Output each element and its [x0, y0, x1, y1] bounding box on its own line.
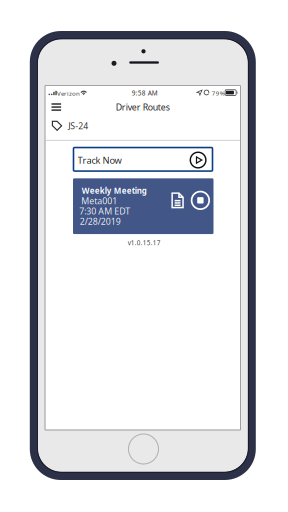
staticText: Meta001	[81, 195, 117, 207]
staticText: 2/28/2019	[80, 215, 121, 227]
staticText: Weekly Meeting	[82, 185, 147, 196]
button[interactable]: Track Now	[73, 148, 212, 171]
staticText: Verizon	[57, 89, 80, 97]
staticText: v1.0.15.17	[128, 238, 161, 247]
staticText: 9:58 AM	[132, 88, 158, 97]
button[interactable]: Weekly Meeting	[73, 178, 213, 234]
staticText: 79%	[212, 89, 225, 97]
staticText: Track Now	[78, 154, 122, 167]
staticText: 7:30 AM EDT	[79, 205, 130, 217]
staticText: Driver Routes	[116, 101, 170, 113]
button[interactable]: Menu	[45, 98, 71, 116]
staticText: JS-24	[68, 120, 88, 132]
